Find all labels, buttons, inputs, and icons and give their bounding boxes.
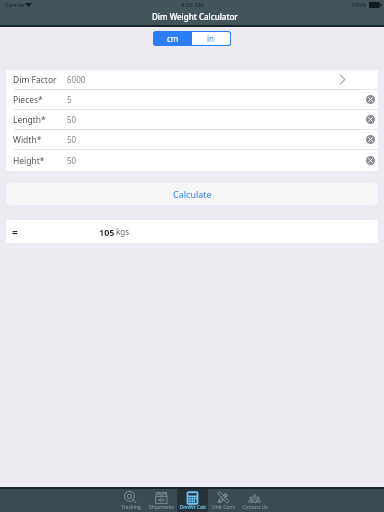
staticText: 50 <box>67 134 77 145</box>
staticText: Height* <box>13 155 45 167</box>
staticText: Contact Us <box>242 504 268 511</box>
button[interactable]: in <box>192 32 230 45</box>
button[interactable]: Clear <box>366 115 375 124</box>
button[interactable]: Tracking <box>115 488 146 512</box>
button[interactable]: Clear <box>366 95 375 104</box>
button[interactable]: Shipments <box>146 488 177 512</box>
staticText: cm <box>167 33 179 44</box>
button[interactable]: Pieces* <box>6 90 378 110</box>
button[interactable]: Unit Conv <box>208 488 239 512</box>
staticText: Calculate <box>173 188 212 200</box>
button[interactable]: Choose dim factor <box>336 73 349 86</box>
staticText: Length* <box>13 114 46 126</box>
staticText: 100% <box>351 1 367 9</box>
staticText: 6000 <box>67 74 86 85</box>
button[interactable]: Length* <box>6 110 378 130</box>
staticText: Pieces* <box>13 94 43 106</box>
staticText: Shipments <box>149 504 174 511</box>
button[interactable]: DimWt Calc <box>177 488 208 512</box>
staticText: DimWt Calc <box>179 504 207 511</box>
staticText: Unit Conv <box>212 504 235 511</box>
staticText: Carrier <box>5 1 25 9</box>
staticText: = <box>12 225 18 239</box>
staticText: in <box>207 33 215 44</box>
button[interactable]: cm <box>153 31 192 46</box>
staticText: 50 <box>67 114 77 125</box>
button[interactable]: Height* <box>6 150 378 171</box>
staticText: Tracking <box>121 504 141 511</box>
button[interactable]: Calculate <box>6 183 378 205</box>
button[interactable]: Clear <box>366 135 375 144</box>
button[interactable]: Contact Us <box>239 488 270 512</box>
staticText: Width* <box>13 134 42 146</box>
staticText: 9:22 AM <box>181 1 204 9</box>
button[interactable]: Clear <box>366 156 375 165</box>
staticText: 50 <box>67 155 77 166</box>
button[interactable]: Dim Factor <box>6 70 378 90</box>
staticText: 105 <box>99 226 115 238</box>
staticText: 5 <box>67 94 72 105</box>
staticText: Dim Factor <box>13 74 57 86</box>
staticText: kgs <box>116 226 130 237</box>
button[interactable]: Width* <box>6 130 378 150</box>
staticText: Dim Weight Calculator <box>152 11 238 22</box>
